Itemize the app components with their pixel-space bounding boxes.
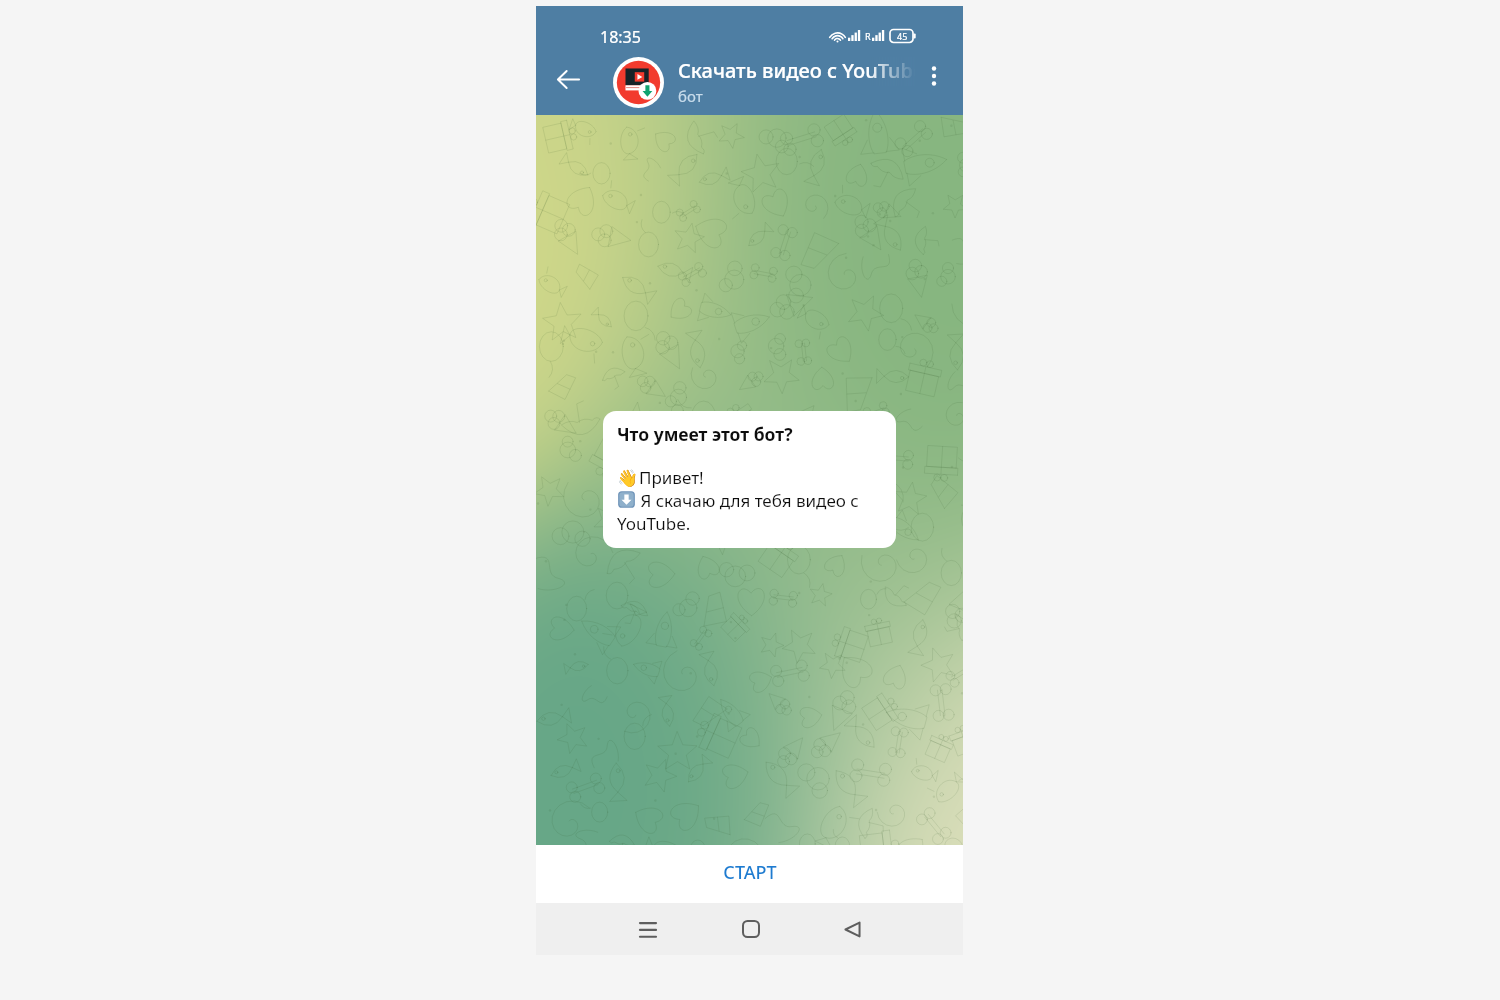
button[interactable]: More options [912,54,956,98]
staticText: Я скачаю для тебя видео с [636,489,859,512]
staticText: СТАРТ [723,860,777,885]
staticText: 👋 [617,468,639,488]
staticText: Скачать видео с YouTube [678,57,915,84]
button[interactable]: Home [729,907,773,951]
staticText: бот [678,86,703,106]
staticText: R [865,30,871,42]
button[interactable]: Что умеет этот бот? [603,411,896,548]
button[interactable]: Recent apps [626,907,670,951]
staticText: Что умеет этот бот? [617,422,793,446]
staticText: 18:35 [600,26,641,48]
button[interactable]: Back [542,53,594,105]
staticText: YouTube. [617,512,691,535]
staticText: 45 [897,30,908,42]
button[interactable]: Back [830,907,874,951]
button[interactable]: Скачать видео с YouTube, бот [598,46,908,108]
button[interactable]: СТАРТ [536,845,963,903]
staticText: Привет! [639,466,704,489]
